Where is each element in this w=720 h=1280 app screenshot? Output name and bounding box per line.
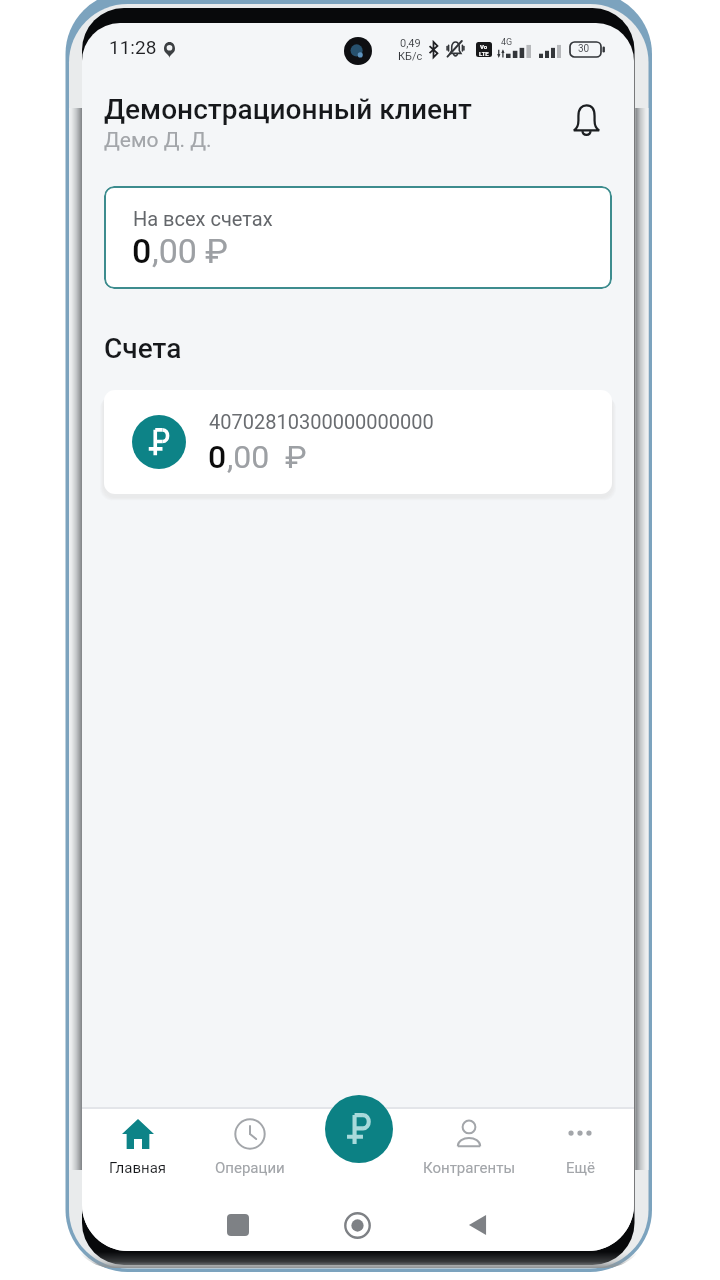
button[interactable]: Домой: [337, 1205, 377, 1245]
button[interactable]: На всех счетах: [104, 186, 612, 289]
button[interactable]: Новый платёж: [325, 1095, 393, 1163]
staticText: Демо Д. Д.: [104, 128, 212, 153]
button[interactable]: 40702810300000000000: [104, 390, 612, 494]
staticText: ,00 ₽: [227, 438, 307, 476]
staticText: 30: [578, 43, 590, 55]
staticText: Ещё: [566, 1159, 595, 1177]
button[interactable]: Недавние приложения: [218, 1205, 258, 1245]
staticText: LTE: [479, 50, 489, 57]
staticText: 40702810300000000000: [209, 410, 434, 433]
staticText: Vo: [480, 43, 488, 50]
button[interactable]: Назад: [457, 1205, 497, 1245]
button[interactable]: Контрагенты: [415, 1118, 523, 1177]
staticText: 0,49: [400, 37, 421, 50]
button[interactable]: Ещё: [526, 1118, 634, 1177]
staticText: Операции: [215, 1159, 285, 1177]
button[interactable]: Операции: [196, 1118, 304, 1177]
staticText: Демонстрационный клиент: [104, 93, 472, 126]
button[interactable]: Главная: [84, 1118, 192, 1177]
staticText: 11:28: [109, 36, 157, 58]
staticText: Главная: [109, 1159, 167, 1177]
staticText: КБ/с: [398, 50, 423, 63]
staticText: 4G: [501, 37, 513, 48]
staticText: Контрагенты: [423, 1159, 516, 1177]
staticText: 0: [208, 438, 227, 476]
staticText: 0: [132, 231, 152, 271]
staticText: На всех счетах: [133, 207, 273, 230]
staticText: Счета: [104, 332, 182, 365]
staticText: ,00 ₽: [152, 231, 228, 271]
button[interactable]: Уведомления: [558, 92, 614, 148]
